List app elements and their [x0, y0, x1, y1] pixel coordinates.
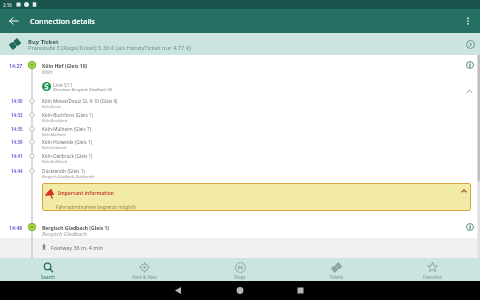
- staticText: Köln Messe/Deutz Gl. 9-10 (Gleis 9): [42, 98, 118, 104]
- staticText: Favorites: [423, 274, 442, 280]
- button[interactable]: 14:35: [0, 122, 480, 136]
- button[interactable]: Here & Now: [96, 258, 192, 281]
- staticText: Köln-Mülheim: [42, 132, 66, 137]
- staticText: Tickets: [329, 274, 344, 280]
- button[interactable]: 14:44: [0, 164, 480, 178]
- button[interactable]: Back: [6, 13, 22, 29]
- staticText: Important information: [58, 190, 114, 197]
- staticText: 14:33: [11, 112, 23, 118]
- button[interactable]: Stops: [192, 258, 288, 281]
- button[interactable]: 14:41: [0, 149, 480, 163]
- staticText: 2:16: [3, 2, 12, 8]
- staticText: Fahrradmitnahme begrenzt möglich: [56, 204, 136, 210]
- staticText: Köln-Buchforst: [42, 118, 68, 123]
- button[interactable]: 14:30: [0, 94, 480, 108]
- staticText: 14:41: [11, 153, 23, 159]
- button[interactable]: 14:39: [0, 135, 480, 149]
- staticText: Köln-Holweide: [42, 145, 67, 150]
- staticText: Köln-Deutz: [42, 104, 61, 109]
- staticText: Preisstufe 3 [RegioTicket] 5,30 € (als H…: [28, 44, 191, 52]
- button[interactable]: Open ticket shop: [466, 40, 475, 49]
- button[interactable]: 14:33: [0, 108, 480, 122]
- staticText: Bergisch Gladbach (Gleis 1): [42, 225, 109, 232]
- button[interactable]: 14:48: [0, 219, 480, 236]
- staticText: 14:35: [11, 126, 23, 132]
- button[interactable]: 14:27: [0, 57, 480, 74]
- staticText: Footway 36 m, 4 min: [51, 244, 103, 251]
- button[interactable]: Stop information: [466, 223, 474, 231]
- button[interactable]: Favorites: [384, 258, 480, 281]
- staticText: Here & Now: [132, 274, 157, 280]
- staticText: Buy Ticket: [28, 38, 59, 46]
- staticText: Köln-Dellbrück (Gleis 1): [42, 153, 93, 159]
- staticText: Köln-Buchforst (Gleis 1): [42, 112, 93, 118]
- button[interactable]: Collapse information: [460, 187, 468, 195]
- button[interactable]: Search: [0, 258, 96, 281]
- staticText: 14:39: [11, 139, 23, 145]
- staticText: 14:48: [9, 224, 23, 231]
- button[interactable]: More options: [460, 13, 476, 29]
- button[interactable]: Footway 36 m, 4 min: [0, 238, 480, 258]
- button[interactable]: Stop information: [466, 61, 474, 69]
- staticText: Connection details: [30, 16, 95, 26]
- button[interactable]: Buy Ticket: [0, 33, 480, 55]
- staticText: Bergisch Gladbach: [42, 230, 87, 237]
- staticText: Bergisch Gladbach-Dückterath: [42, 174, 95, 179]
- button[interactable]: Important information: [42, 183, 471, 211]
- staticText: 14:30: [11, 98, 23, 104]
- staticText: Köln-Dellbrück: [42, 159, 68, 164]
- staticText: Line S11: [53, 82, 73, 89]
- staticText: Stops: [234, 274, 246, 280]
- staticText: 14:27: [9, 62, 23, 69]
- staticText: Direction: Bergisch Gladbach (S): [53, 87, 113, 93]
- staticText: Köln-Mülheim (Gleis 7): [42, 126, 91, 132]
- staticText: Köln: [42, 68, 53, 75]
- button[interactable]: Collapse stops: [465, 87, 474, 96]
- button[interactable]: Tickets: [288, 258, 384, 281]
- staticText: Köln-Holweide (Gleis 1): [42, 139, 93, 145]
- staticText: Search: [41, 274, 56, 280]
- staticText: Dückterath (Gleis 1): [42, 168, 85, 174]
- staticText: Köln Hbf (Gleis 10): [42, 63, 88, 70]
- staticText: 14:44: [11, 168, 23, 174]
